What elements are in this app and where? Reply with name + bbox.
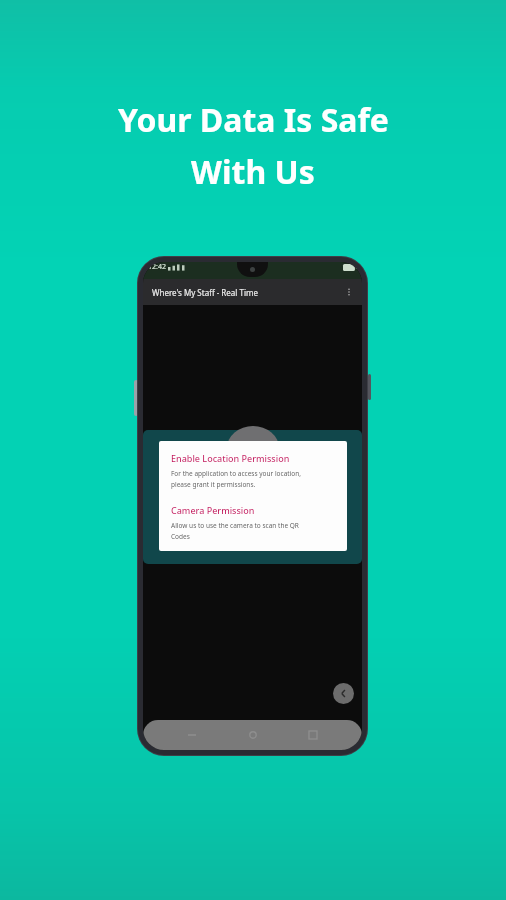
button[interactable]: Home: [242, 724, 264, 746]
button[interactable]: Back: [333, 683, 354, 704]
staticText: Enable Location Permission: [171, 452, 290, 464]
staticText: Your Data Is Safe: [118, 98, 389, 142]
button[interactable]: Enable Location Permission: [159, 441, 347, 551]
staticText: Where's My Staff - Real Time: [152, 287, 258, 298]
button[interactable]: More options: [341, 284, 357, 300]
button[interactable]: Recents: [302, 724, 324, 746]
staticText: 12:42: [148, 262, 166, 272]
button[interactable]: Where's My Staff - Real Time: [143, 279, 362, 305]
staticText: For the application to access your locat…: [171, 469, 301, 478]
staticText: Codes: [171, 532, 190, 540]
staticText: Allow us to use the camera to scan the Q…: [171, 521, 299, 530]
staticText: With Us: [191, 150, 315, 194]
staticText: Camera Permission: [171, 504, 255, 516]
staticText: please grant it permissions.: [171, 480, 256, 489]
